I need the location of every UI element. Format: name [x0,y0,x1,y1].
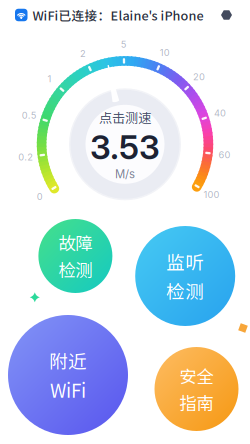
staticText: 2 [80,48,86,59]
staticText: 1 [47,73,51,84]
button[interactable]: 设置 [219,7,234,22]
staticText: M/s [115,167,135,181]
staticText: 0 [37,191,43,202]
staticText: 点击测速 [99,108,151,127]
staticText: WiFi [50,376,86,403]
staticText: 100 [203,189,219,200]
staticText: 60 [218,149,230,160]
staticText: 故障 [58,230,92,255]
staticText: 20 [193,71,205,83]
staticText: 5 [121,39,127,50]
staticText: 0.5 [22,110,37,121]
button[interactable]: 安全 [154,347,238,431]
button[interactable]: 监听 [135,226,235,326]
staticText: 40 [214,107,226,119]
staticText: 3.53 [90,127,160,167]
staticText: 0.2 [18,152,33,163]
staticText: 检测 [166,277,204,304]
staticText: 监听 [166,248,204,275]
staticText: 10 [160,47,170,58]
staticText: 检测 [58,257,92,282]
staticText: WiFi已连接：Elaine's iPhone [32,6,203,24]
staticText: 附近 [49,347,87,374]
button[interactable]: 故障 [38,219,112,293]
staticText: 指南 [179,390,213,415]
staticText: 安全 [179,363,213,388]
button[interactable]: 附近 [8,315,128,435]
